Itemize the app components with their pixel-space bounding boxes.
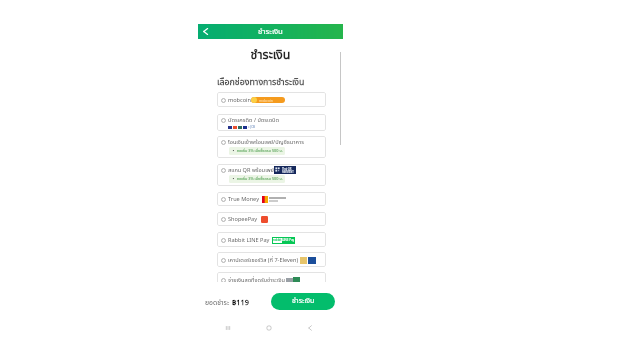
button[interactable]: สแกน QR พร้อมเพย์ bbox=[217, 164, 326, 186]
staticText: rabbit bbox=[273, 238, 282, 243]
staticText: True Money bbox=[228, 195, 260, 203]
staticText: ชำระเงิน bbox=[292, 296, 315, 307]
staticText: จ่ายเงินสดที่จุดรับชำระเงิน bbox=[228, 276, 285, 284]
button[interactable]: Back bbox=[198, 24, 213, 39]
button[interactable]: Rabbit LINE Pay bbox=[217, 232, 326, 247]
staticText: Thai QR PAYMENT bbox=[282, 167, 294, 174]
button[interactable]: Back bbox=[305, 323, 314, 332]
staticText: ฿119 bbox=[232, 297, 249, 308]
button[interactable]: จ่ายเงินสดที่จุดรับชำระเงิน bbox=[217, 272, 326, 287]
staticText: LINE Pay bbox=[282, 238, 295, 243]
staticText: mobcoin bbox=[259, 98, 273, 103]
button[interactable]: ชำระเงิน bbox=[271, 293, 335, 310]
button[interactable]: Recent apps bbox=[223, 323, 232, 332]
staticText: » JCB bbox=[248, 125, 255, 130]
button[interactable]: ShopeePay bbox=[217, 212, 326, 226]
staticText: ▪ ลดเพิ่ม 3% เมื่อซื้อครบ 500 บ. bbox=[231, 148, 283, 154]
staticText: ShopeePay bbox=[228, 215, 258, 223]
button[interactable]: True Money bbox=[217, 192, 326, 206]
staticText: ▪ ลดเพิ่ม 3% เมื่อซื้อครบ 500 บ. bbox=[231, 176, 283, 182]
button[interactable]: mobcoin bbox=[217, 92, 326, 107]
staticText: ชำระเงิน bbox=[258, 26, 283, 38]
button[interactable]: โอนเงินเข้าพร้อมเพย์/บัญชีธนาคาร bbox=[217, 136, 326, 158]
staticText: โอนเงินเข้าพร้อมเพย์/บัญชีธนาคาร bbox=[228, 138, 304, 146]
staticText: ยอดชำระ bbox=[205, 298, 232, 308]
button[interactable]: Home bbox=[264, 323, 273, 332]
staticText: เคาน์เตอร์เซอร์วิส (ที่ 7-Eleven) bbox=[228, 256, 299, 264]
staticText: ชำระเงิน bbox=[198, 46, 343, 65]
button[interactable]: บัตรเครดิต / บัตรเดบิต bbox=[217, 114, 326, 131]
staticText: เลือกช่องทางการชำระเงิน bbox=[217, 76, 305, 89]
staticText: Rabbit LINE Pay bbox=[228, 236, 270, 244]
staticText: สแกน QR พร้อมเพย์ bbox=[228, 166, 274, 174]
staticText: บัตรเครดิต / บัตรเดบิต bbox=[228, 116, 280, 124]
staticText: mobcoin bbox=[228, 96, 252, 104]
button[interactable]: เคาน์เตอร์เซอร์วิส (ที่ 7-Eleven) bbox=[217, 252, 326, 267]
